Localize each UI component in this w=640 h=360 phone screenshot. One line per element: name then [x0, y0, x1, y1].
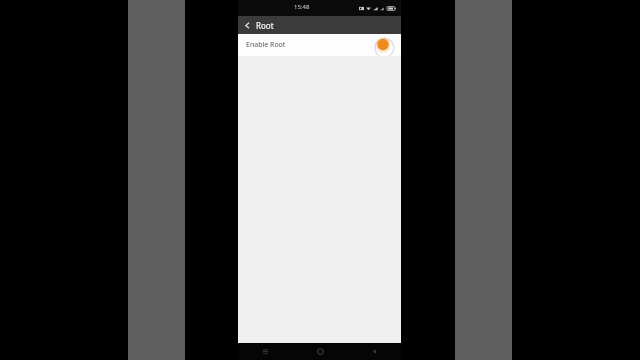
staticText: Enable Root [246, 40, 286, 50]
button[interactable]: Back [347, 343, 401, 360]
button[interactable]: Back [238, 16, 256, 34]
staticText: Root [256, 20, 274, 31]
button[interactable]: Enable Root [238, 34, 401, 56]
button[interactable]: Recent apps [238, 343, 293, 360]
button[interactable]: Enable Root toggle [369, 34, 395, 56]
staticText: 15:48 [294, 3, 310, 11]
button[interactable]: Home [293, 343, 347, 360]
